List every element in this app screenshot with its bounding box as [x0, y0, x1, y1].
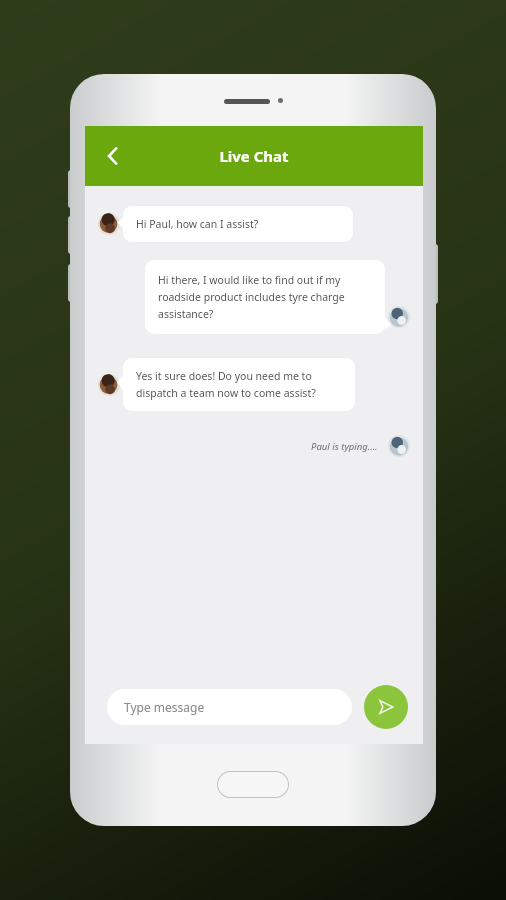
- button[interactable]: Yes it sure does! Do you need me to disp…: [123, 358, 355, 411]
- button[interactable]: Send: [364, 685, 408, 729]
- staticText: Type message: [124, 699, 205, 715]
- staticText: Hi there, I would like to find out if my…: [158, 273, 372, 321]
- button[interactable]: Back: [91, 134, 135, 178]
- button[interactable]: Agent avatar: [98, 374, 120, 396]
- button[interactable]: Home: [218, 772, 288, 797]
- staticText: Hi Paul, how can I assist?: [136, 217, 259, 231]
- staticText: Yes it sure does! Do you need me to disp…: [136, 369, 342, 400]
- button[interactable]: Hi Paul, how can I assist?: [123, 206, 353, 242]
- button[interactable]: Type message: [107, 689, 352, 725]
- button[interactable]: Your avatar: [388, 435, 410, 457]
- button[interactable]: Hi there, I would like to find out if my…: [145, 260, 385, 334]
- button[interactable]: Agent avatar: [98, 213, 120, 235]
- button[interactable]: Your avatar: [388, 306, 410, 328]
- staticText: Live Chat: [219, 146, 289, 166]
- staticText: Paul is typing....: [311, 440, 378, 453]
